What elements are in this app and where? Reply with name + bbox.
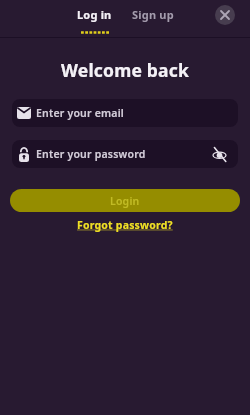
button[interactable]: [215, 5, 235, 25]
staticText: Login: [110, 194, 140, 208]
staticText: Welcome back: [61, 58, 190, 82]
staticText: Enter your email: [36, 106, 124, 120]
button[interactable]: Enter your password: [12, 140, 238, 168]
button[interactable]: Login: [10, 189, 240, 212]
button[interactable]: Forgot password?: [77, 218, 173, 232]
staticText: Sign up: [132, 7, 174, 22]
staticText: Enter your password: [36, 147, 146, 161]
staticText: Forgot password?: [77, 218, 173, 232]
button[interactable]: Log in: [77, 0, 112, 34]
button[interactable]: Enter your email: [12, 99, 238, 127]
button[interactable]: Sign up: [132, 0, 174, 22]
button[interactable]: [212, 147, 227, 162]
staticText: Log in: [77, 7, 112, 22]
